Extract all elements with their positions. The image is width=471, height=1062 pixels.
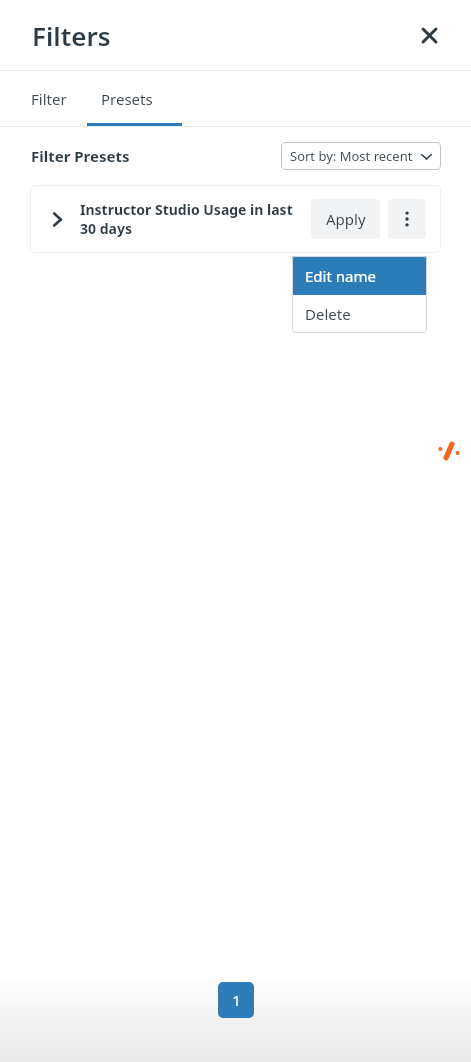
staticText: Filter Presets (31, 146, 130, 166)
button[interactable]: Expand preset (40, 202, 74, 236)
staticText: Delete (305, 304, 351, 324)
button[interactable]: Help (427, 427, 471, 475)
staticText: Filters (32, 18, 111, 53)
button[interactable]: Sort by: Most recent (281, 142, 441, 170)
button[interactable]: Delete (292, 295, 427, 333)
button[interactable]: More options (388, 199, 426, 239)
button[interactable]: Apply (311, 199, 380, 239)
button[interactable]: Edit name (292, 256, 427, 295)
staticText: Apply (326, 209, 366, 229)
staticText: 1 (232, 990, 241, 1010)
button[interactable]: Filter (14, 71, 84, 126)
staticText: Presets (101, 89, 153, 109)
button[interactable]: 1 (218, 982, 254, 1018)
staticText: Filter (31, 89, 67, 109)
button[interactable]: Presets (84, 71, 170, 126)
button[interactable]: Close (409, 15, 449, 55)
staticText: Edit name (305, 266, 376, 286)
staticText: Sort by: Most recent (290, 147, 413, 165)
staticText: Instructor Studio Usage in last 30 days (80, 200, 305, 238)
